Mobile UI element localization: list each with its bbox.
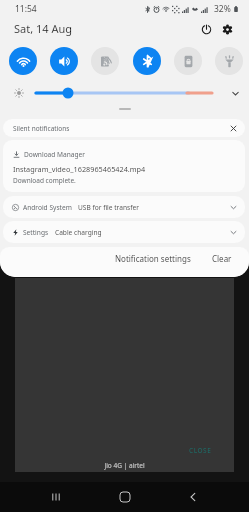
button[interactable]: Flashlight bbox=[215, 47, 243, 75]
button[interactable]: NFC bbox=[91, 47, 119, 75]
staticText: 32% bbox=[214, 3, 231, 15]
button[interactable]: Clear bbox=[208, 249, 236, 268]
button[interactable]: Download Manager bbox=[3, 140, 245, 192]
button[interactable]: Silent notifications bbox=[3, 119, 245, 137]
button[interactable]: Notification settings bbox=[111, 249, 195, 268]
staticText: Clear bbox=[212, 253, 232, 264]
staticText: 11:54 bbox=[15, 3, 37, 15]
staticText: Download complete. bbox=[13, 176, 76, 185]
staticText: Instagram_video_1628965465424.mp4 bbox=[13, 164, 146, 174]
staticText: Settings bbox=[23, 228, 49, 237]
button[interactable]: Settings bbox=[217, 19, 237, 39]
button[interactable]: Settings bbox=[3, 221, 245, 243]
button[interactable]: Android System bbox=[3, 196, 245, 218]
button[interactable]: Recents bbox=[43, 484, 69, 510]
button[interactable]: Power bbox=[196, 19, 216, 39]
staticText: Cable charging bbox=[55, 228, 102, 237]
staticText: Jio 4G | airtel bbox=[0, 461, 249, 470]
button[interactable]: Back bbox=[180, 484, 206, 510]
staticText: Download Manager bbox=[24, 150, 86, 159]
staticText: Android System bbox=[23, 203, 72, 212]
staticText: Notification settings bbox=[115, 253, 191, 264]
staticText: USB for file transfer bbox=[78, 203, 139, 212]
staticText: Sat, 14 Aug bbox=[14, 21, 73, 36]
staticText: Silent notifications bbox=[13, 124, 70, 133]
button[interactable]: Wi-Fi bbox=[9, 47, 37, 75]
staticText: CLOSE bbox=[189, 446, 212, 455]
button[interactable]: Sound bbox=[50, 47, 78, 75]
button[interactable]: Bluetooth bbox=[133, 47, 161, 75]
button[interactable]: Auto rotate bbox=[174, 47, 202, 75]
button[interactable]: Home bbox=[112, 484, 138, 510]
